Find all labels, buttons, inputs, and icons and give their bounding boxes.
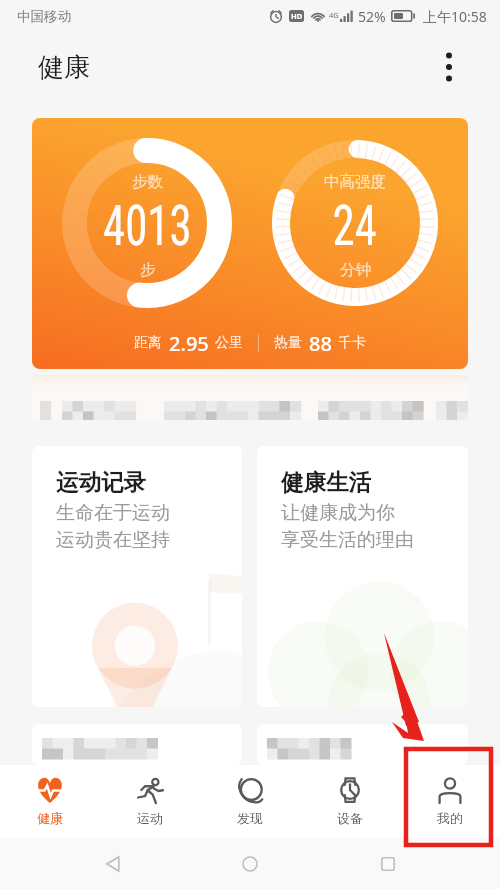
staticText: 步数	[132, 172, 163, 192]
button[interactable]: 健康生活	[257, 446, 468, 707]
staticText: 公里	[215, 334, 243, 352]
staticText: 4013	[103, 193, 192, 259]
staticText: 2.95	[169, 330, 209, 357]
button[interactable]: Home	[225, 839, 275, 889]
staticText: 设备	[337, 810, 363, 826]
button[interactable]: Recents	[363, 839, 413, 889]
button[interactable]: 发现	[200, 765, 300, 838]
button[interactable]: Back	[88, 839, 138, 889]
staticText: 88	[309, 330, 332, 357]
button[interactable]: 运动记录	[32, 446, 242, 707]
button[interactable]	[32, 724, 242, 765]
button[interactable]: 设备	[300, 765, 400, 838]
staticText: HD	[291, 11, 303, 21]
staticText: 上午10:58	[423, 7, 487, 26]
staticText: 运动记录	[56, 468, 146, 496]
staticText: 中高强度	[324, 172, 386, 192]
staticText: 我的	[437, 810, 463, 826]
staticText: 发现	[237, 810, 263, 826]
staticText: 生命在于运动 运动贵在坚持	[56, 501, 170, 552]
staticText: 运动	[137, 810, 163, 826]
staticText: 千卡	[338, 334, 366, 352]
button[interactable]: 我的	[400, 765, 500, 838]
button[interactable]	[32, 375, 468, 420]
button[interactable]: 运动	[100, 765, 200, 838]
staticText: 热量	[274, 334, 302, 352]
staticText: 52%	[358, 7, 386, 26]
button[interactable]: 步数	[32, 118, 468, 369]
staticText: 健康	[37, 810, 63, 826]
button[interactable]: More options	[431, 49, 467, 85]
button[interactable]	[257, 724, 468, 765]
staticText: 让健康成为你 享受生活的理由	[281, 501, 414, 552]
staticText: 4G	[329, 10, 339, 20]
staticText: 步	[140, 260, 156, 280]
staticText: 分钟	[340, 260, 371, 280]
staticText: 健康	[38, 51, 90, 84]
button[interactable]: 健康	[0, 765, 100, 838]
staticText: 健康生活	[281, 468, 371, 496]
staticText: 距离	[134, 334, 162, 352]
staticText: 中国移动	[17, 8, 71, 25]
staticText: 24	[333, 193, 377, 259]
